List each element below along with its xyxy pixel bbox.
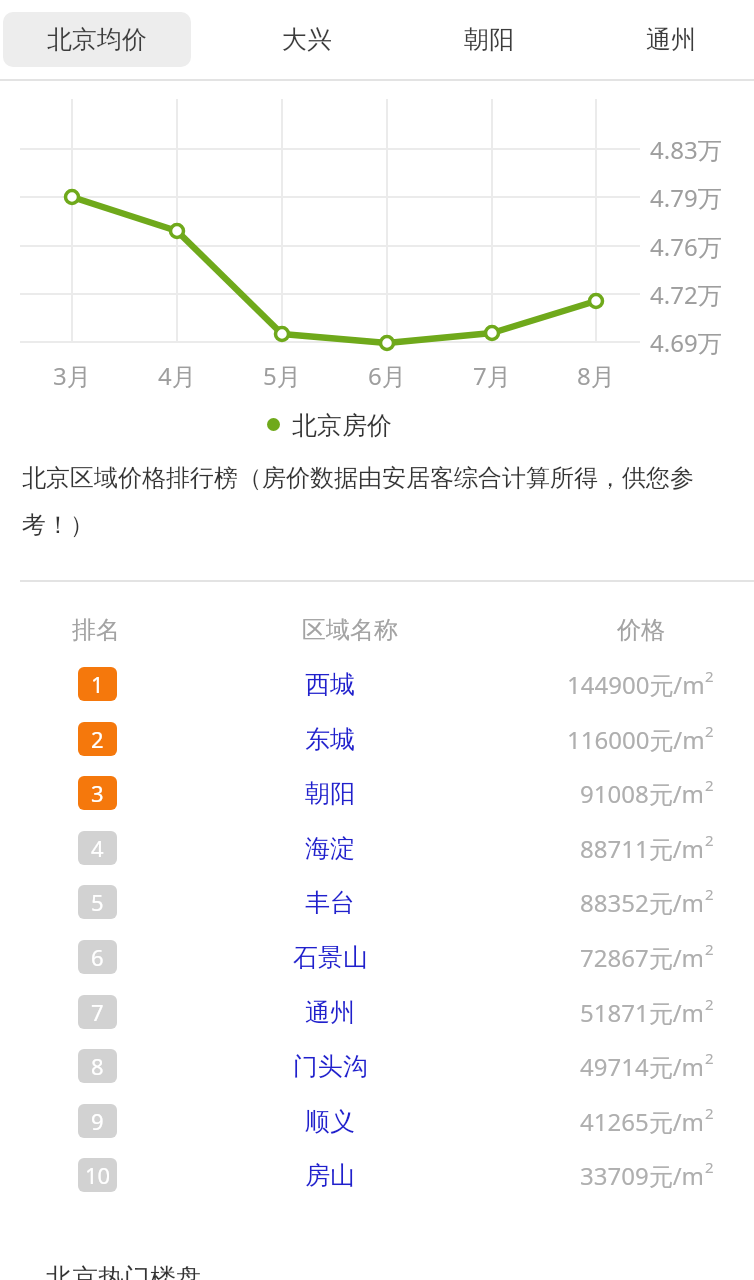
button[interactable]: 5 <box>0 875 754 929</box>
staticText: 北京房价 <box>292 410 392 441</box>
staticText: 西城 <box>305 669 355 700</box>
staticText: 4.79万 <box>650 181 722 214</box>
staticText: 海淀 <box>305 833 355 864</box>
staticText: 88352元/m <box>580 886 705 919</box>
button[interactable]: 9 <box>0 1094 754 1148</box>
staticText: 2 <box>705 884 714 904</box>
staticText: 4.72万 <box>650 278 722 311</box>
staticText: 2 <box>705 939 714 959</box>
button[interactable]: 北京均价 <box>3 12 191 67</box>
staticText: 2 <box>705 1048 714 1068</box>
staticText: 5月 <box>263 359 301 392</box>
staticText: 9 <box>91 1106 104 1136</box>
button[interactable]: 4 <box>0 821 754 875</box>
staticText: 8月 <box>577 359 615 392</box>
staticText: 2 <box>705 721 714 741</box>
staticText: 2 <box>705 994 714 1014</box>
staticText: 排名 <box>72 615 120 645</box>
staticText: 丰台 <box>305 887 355 918</box>
staticText: 石景山 <box>293 942 368 973</box>
staticText: 大兴 <box>282 24 332 55</box>
staticText: 72867元/m <box>580 941 705 974</box>
button[interactable]: 8 <box>0 1039 754 1093</box>
staticText: 2 <box>705 775 714 795</box>
staticText: 91008元/m <box>580 777 705 810</box>
staticText: 2 <box>705 830 714 850</box>
staticText: 2 <box>705 1103 714 1123</box>
button[interactable]: 10 <box>0 1148 754 1202</box>
staticText: 51871元/m <box>580 996 705 1029</box>
staticText: 4月 <box>158 359 196 392</box>
staticText: 10 <box>85 1160 111 1190</box>
staticText: 6 <box>91 942 104 972</box>
staticText: 116000元/m <box>567 723 705 756</box>
staticText: 通州 <box>305 997 355 1028</box>
staticText: 北京均价 <box>47 24 147 55</box>
staticText: 4 <box>91 833 104 863</box>
staticText: 7 <box>91 997 104 1027</box>
button[interactable]: 6 <box>0 930 754 984</box>
button[interactable]: 3 <box>0 766 754 820</box>
staticText: 北京热门楼盘 <box>46 1262 202 1280</box>
staticText: 6月 <box>368 359 406 392</box>
staticText: 区域名称 <box>302 615 398 645</box>
staticText: 房山 <box>305 1160 355 1191</box>
staticText: 8 <box>91 1051 104 1081</box>
staticText: 2 <box>705 1157 714 1177</box>
button[interactable]: 大兴 <box>247 12 367 67</box>
staticText: 4.76万 <box>650 230 722 263</box>
staticText: 4.69万 <box>650 326 722 359</box>
staticText: 2 <box>91 724 104 754</box>
staticText: 3 <box>91 778 104 808</box>
button[interactable]: 1 <box>0 657 754 711</box>
staticText: 3月 <box>53 359 91 392</box>
staticText: 33709元/m <box>580 1159 705 1192</box>
staticText: 41265元/m <box>580 1105 705 1138</box>
staticText: 49714元/m <box>580 1050 705 1083</box>
button[interactable]: 通州 <box>611 12 731 67</box>
staticText: 东城 <box>305 724 355 755</box>
staticText: 2 <box>705 666 714 686</box>
staticText: 通州 <box>646 24 696 55</box>
staticText: 7月 <box>473 359 511 392</box>
staticText: 朝阳 <box>464 24 514 55</box>
staticText: 5 <box>91 887 104 917</box>
staticText: 顺义 <box>305 1106 355 1137</box>
staticText: 北京区域价格排行榜（房价数据由安居客综合计算所得，供您参考！） <box>22 463 736 540</box>
button[interactable]: 7 <box>0 985 754 1039</box>
staticText: 88711元/m <box>580 832 705 865</box>
staticText: 价格 <box>617 615 665 645</box>
button[interactable]: 2 <box>0 712 754 766</box>
staticText: 144900元/m <box>567 668 705 701</box>
button[interactable]: 朝阳 <box>429 12 549 67</box>
staticText: 朝阳 <box>305 778 355 809</box>
staticText: 4.83万 <box>650 133 722 166</box>
staticText: 门头沟 <box>293 1051 368 1082</box>
staticText: 1 <box>91 669 104 699</box>
